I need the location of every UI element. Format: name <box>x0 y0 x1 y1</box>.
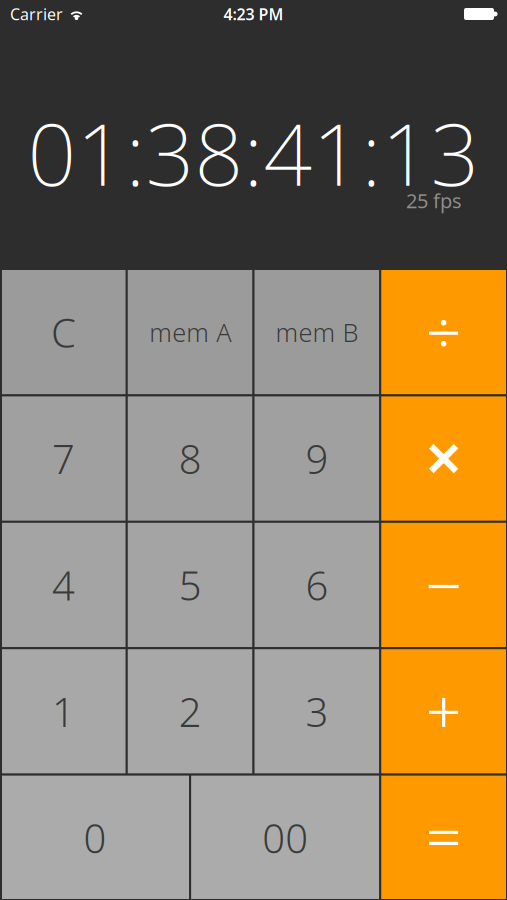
staticText: 4:23 PM <box>223 3 283 25</box>
button[interactable]: 9 <box>254 396 379 521</box>
staticText: 3 <box>305 685 328 738</box>
staticText: 5 <box>179 558 202 611</box>
button[interactable]: 2 <box>128 649 253 774</box>
button[interactable]: C <box>1 270 126 394</box>
staticText: 2 <box>179 685 202 738</box>
staticText: mem B <box>275 315 358 349</box>
staticText: mem A <box>149 315 231 349</box>
button[interactable]: 5 <box>128 523 253 647</box>
button[interactable]: Multiply <box>381 396 506 521</box>
button[interactable]: mem B <box>254 270 379 394</box>
button[interactable]: 0 <box>1 776 189 900</box>
staticText: 9 <box>305 432 328 485</box>
staticText: Carrier <box>10 3 63 25</box>
button[interactable]: 7 <box>1 396 126 521</box>
staticText: 1 <box>52 685 75 738</box>
button[interactable]: 8 <box>128 396 253 521</box>
staticText: 25 fps <box>406 187 462 214</box>
staticText: 7 <box>52 432 75 485</box>
staticText: 8 <box>179 432 202 485</box>
staticText: 6 <box>305 558 328 611</box>
staticText: 4 <box>52 558 75 611</box>
button[interactable]: mem A <box>128 270 253 394</box>
button[interactable]: 6 <box>254 523 379 647</box>
button[interactable]: 4 <box>1 523 126 647</box>
staticText: 0 <box>84 811 107 864</box>
button[interactable]: Divide <box>381 270 506 394</box>
button[interactable]: 00 <box>191 776 379 900</box>
staticText: C <box>51 306 76 359</box>
button[interactable]: 3 <box>254 649 379 774</box>
button[interactable]: 1 <box>1 649 126 774</box>
button[interactable]: Equals <box>381 776 506 900</box>
staticText: 01:38:41:13 <box>27 96 479 209</box>
button[interactable]: Add <box>381 649 506 774</box>
button[interactable]: Subtract <box>381 523 506 647</box>
staticText: 00 <box>262 811 308 864</box>
